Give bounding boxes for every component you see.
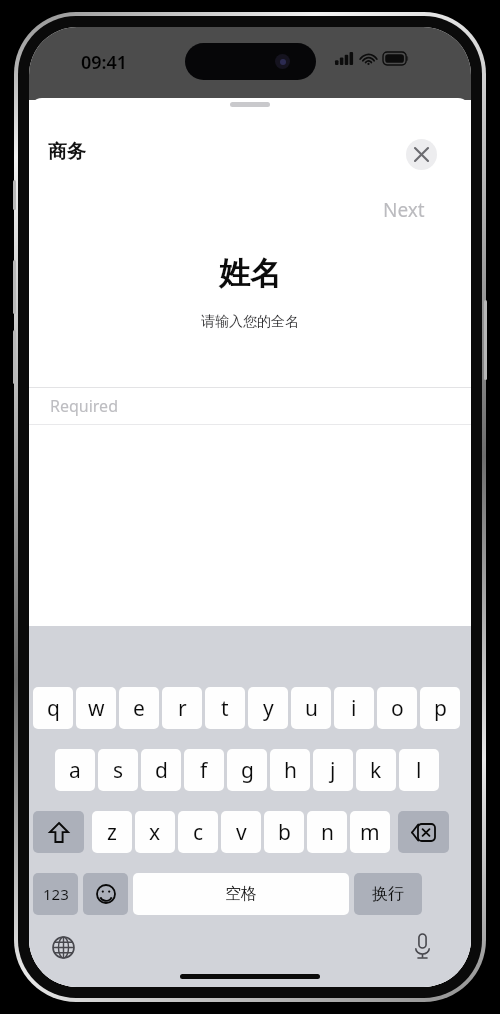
staticText: m bbox=[360, 818, 380, 847]
button[interactable]: n bbox=[307, 811, 347, 853]
staticText: Next bbox=[383, 197, 425, 223]
staticText: x bbox=[149, 818, 161, 847]
staticText: z bbox=[107, 818, 117, 847]
button[interactable]: x bbox=[135, 811, 175, 853]
button[interactable]: f bbox=[184, 749, 224, 791]
button[interactable]: j bbox=[313, 749, 353, 791]
staticText: 123 bbox=[43, 884, 69, 904]
button[interactable]: d bbox=[141, 749, 181, 791]
staticText: w bbox=[88, 694, 105, 723]
button[interactable]: g bbox=[227, 749, 267, 791]
staticText: j bbox=[330, 756, 336, 785]
staticText: Required bbox=[50, 395, 118, 417]
button[interactable]: y bbox=[248, 687, 288, 729]
button[interactable]: Shift bbox=[33, 811, 84, 853]
staticText: k bbox=[370, 756, 382, 785]
button[interactable]: Emoji bbox=[83, 873, 128, 915]
button[interactable]: p bbox=[420, 687, 460, 729]
button[interactable]: l bbox=[399, 749, 439, 791]
button[interactable]: Close bbox=[406, 139, 437, 170]
staticText: q bbox=[47, 694, 60, 723]
button[interactable]: 123 bbox=[33, 873, 78, 915]
button[interactable]: v bbox=[221, 811, 261, 853]
staticText: a bbox=[69, 756, 81, 785]
staticText: v bbox=[236, 818, 247, 847]
staticText: 09:41 bbox=[81, 50, 128, 75]
staticText: g bbox=[241, 756, 254, 785]
staticText: 姓名 bbox=[29, 254, 471, 293]
button[interactable]: q bbox=[33, 687, 73, 729]
staticText: f bbox=[200, 756, 208, 785]
staticText: i bbox=[351, 694, 357, 723]
button[interactable]: z bbox=[92, 811, 132, 853]
button[interactable]: b bbox=[264, 811, 304, 853]
staticText: e bbox=[133, 694, 145, 723]
button[interactable]: 空格 bbox=[133, 873, 349, 915]
staticText: l bbox=[416, 756, 422, 785]
staticText: r bbox=[178, 694, 187, 723]
staticText: n bbox=[321, 818, 334, 847]
button[interactable]: Next keyboard bbox=[47, 931, 79, 963]
button[interactable]: h bbox=[270, 749, 310, 791]
button[interactable]: Next bbox=[377, 194, 431, 226]
button[interactable]: o bbox=[377, 687, 417, 729]
staticText: b bbox=[278, 818, 291, 847]
staticText: t bbox=[221, 694, 229, 723]
staticText: u bbox=[305, 694, 318, 723]
button[interactable]: Required bbox=[29, 388, 471, 424]
staticText: d bbox=[155, 756, 168, 785]
button[interactable]: w bbox=[76, 687, 116, 729]
staticText: o bbox=[391, 694, 404, 723]
button[interactable]: Dictation bbox=[405, 929, 439, 963]
button[interactable]: e bbox=[119, 687, 159, 729]
staticText: h bbox=[284, 756, 297, 785]
button[interactable]: a bbox=[55, 749, 95, 791]
button[interactable]: c bbox=[178, 811, 218, 853]
button[interactable]: m bbox=[350, 811, 390, 853]
button[interactable]: i bbox=[334, 687, 374, 729]
button[interactable]: Backspace bbox=[398, 811, 449, 853]
staticText: 商务 bbox=[48, 140, 86, 164]
button[interactable]: t bbox=[205, 687, 245, 729]
staticText: p bbox=[434, 694, 447, 723]
button[interactable]: 换行 bbox=[354, 873, 422, 915]
staticText: 请输入您的全名 bbox=[29, 313, 471, 331]
staticText: y bbox=[263, 694, 274, 723]
staticText: 换行 bbox=[372, 884, 404, 904]
staticText: s bbox=[113, 756, 124, 785]
button[interactable]: u bbox=[291, 687, 331, 729]
button[interactable]: s bbox=[98, 749, 138, 791]
button[interactable]: r bbox=[162, 687, 202, 729]
staticText: c bbox=[193, 818, 204, 847]
button[interactable]: k bbox=[356, 749, 396, 791]
staticText: 空格 bbox=[225, 884, 257, 904]
